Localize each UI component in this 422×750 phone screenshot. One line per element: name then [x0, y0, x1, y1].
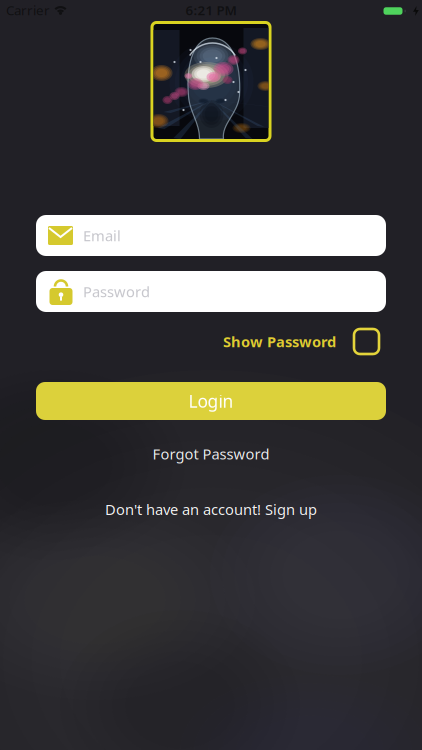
staticText: Forgot Password	[152, 444, 269, 463]
staticText: Email	[83, 226, 121, 245]
staticText: Password	[83, 282, 150, 301]
button[interactable]: Password	[36, 271, 386, 312]
button[interactable]: Login	[36, 382, 386, 420]
button[interactable]: Show Password	[223, 329, 379, 354]
button[interactable]: Forgot Password	[152, 444, 269, 463]
button[interactable]: Don't have an account! Sign up	[105, 499, 317, 519]
staticText: Login	[188, 389, 233, 412]
staticText: 6:21 PM	[185, 1, 236, 19]
staticText: Don't have an account! Sign up	[105, 499, 317, 519]
staticText: Carrier	[6, 1, 50, 19]
button[interactable]: Email	[36, 215, 386, 256]
staticText: Show Password	[223, 332, 336, 351]
